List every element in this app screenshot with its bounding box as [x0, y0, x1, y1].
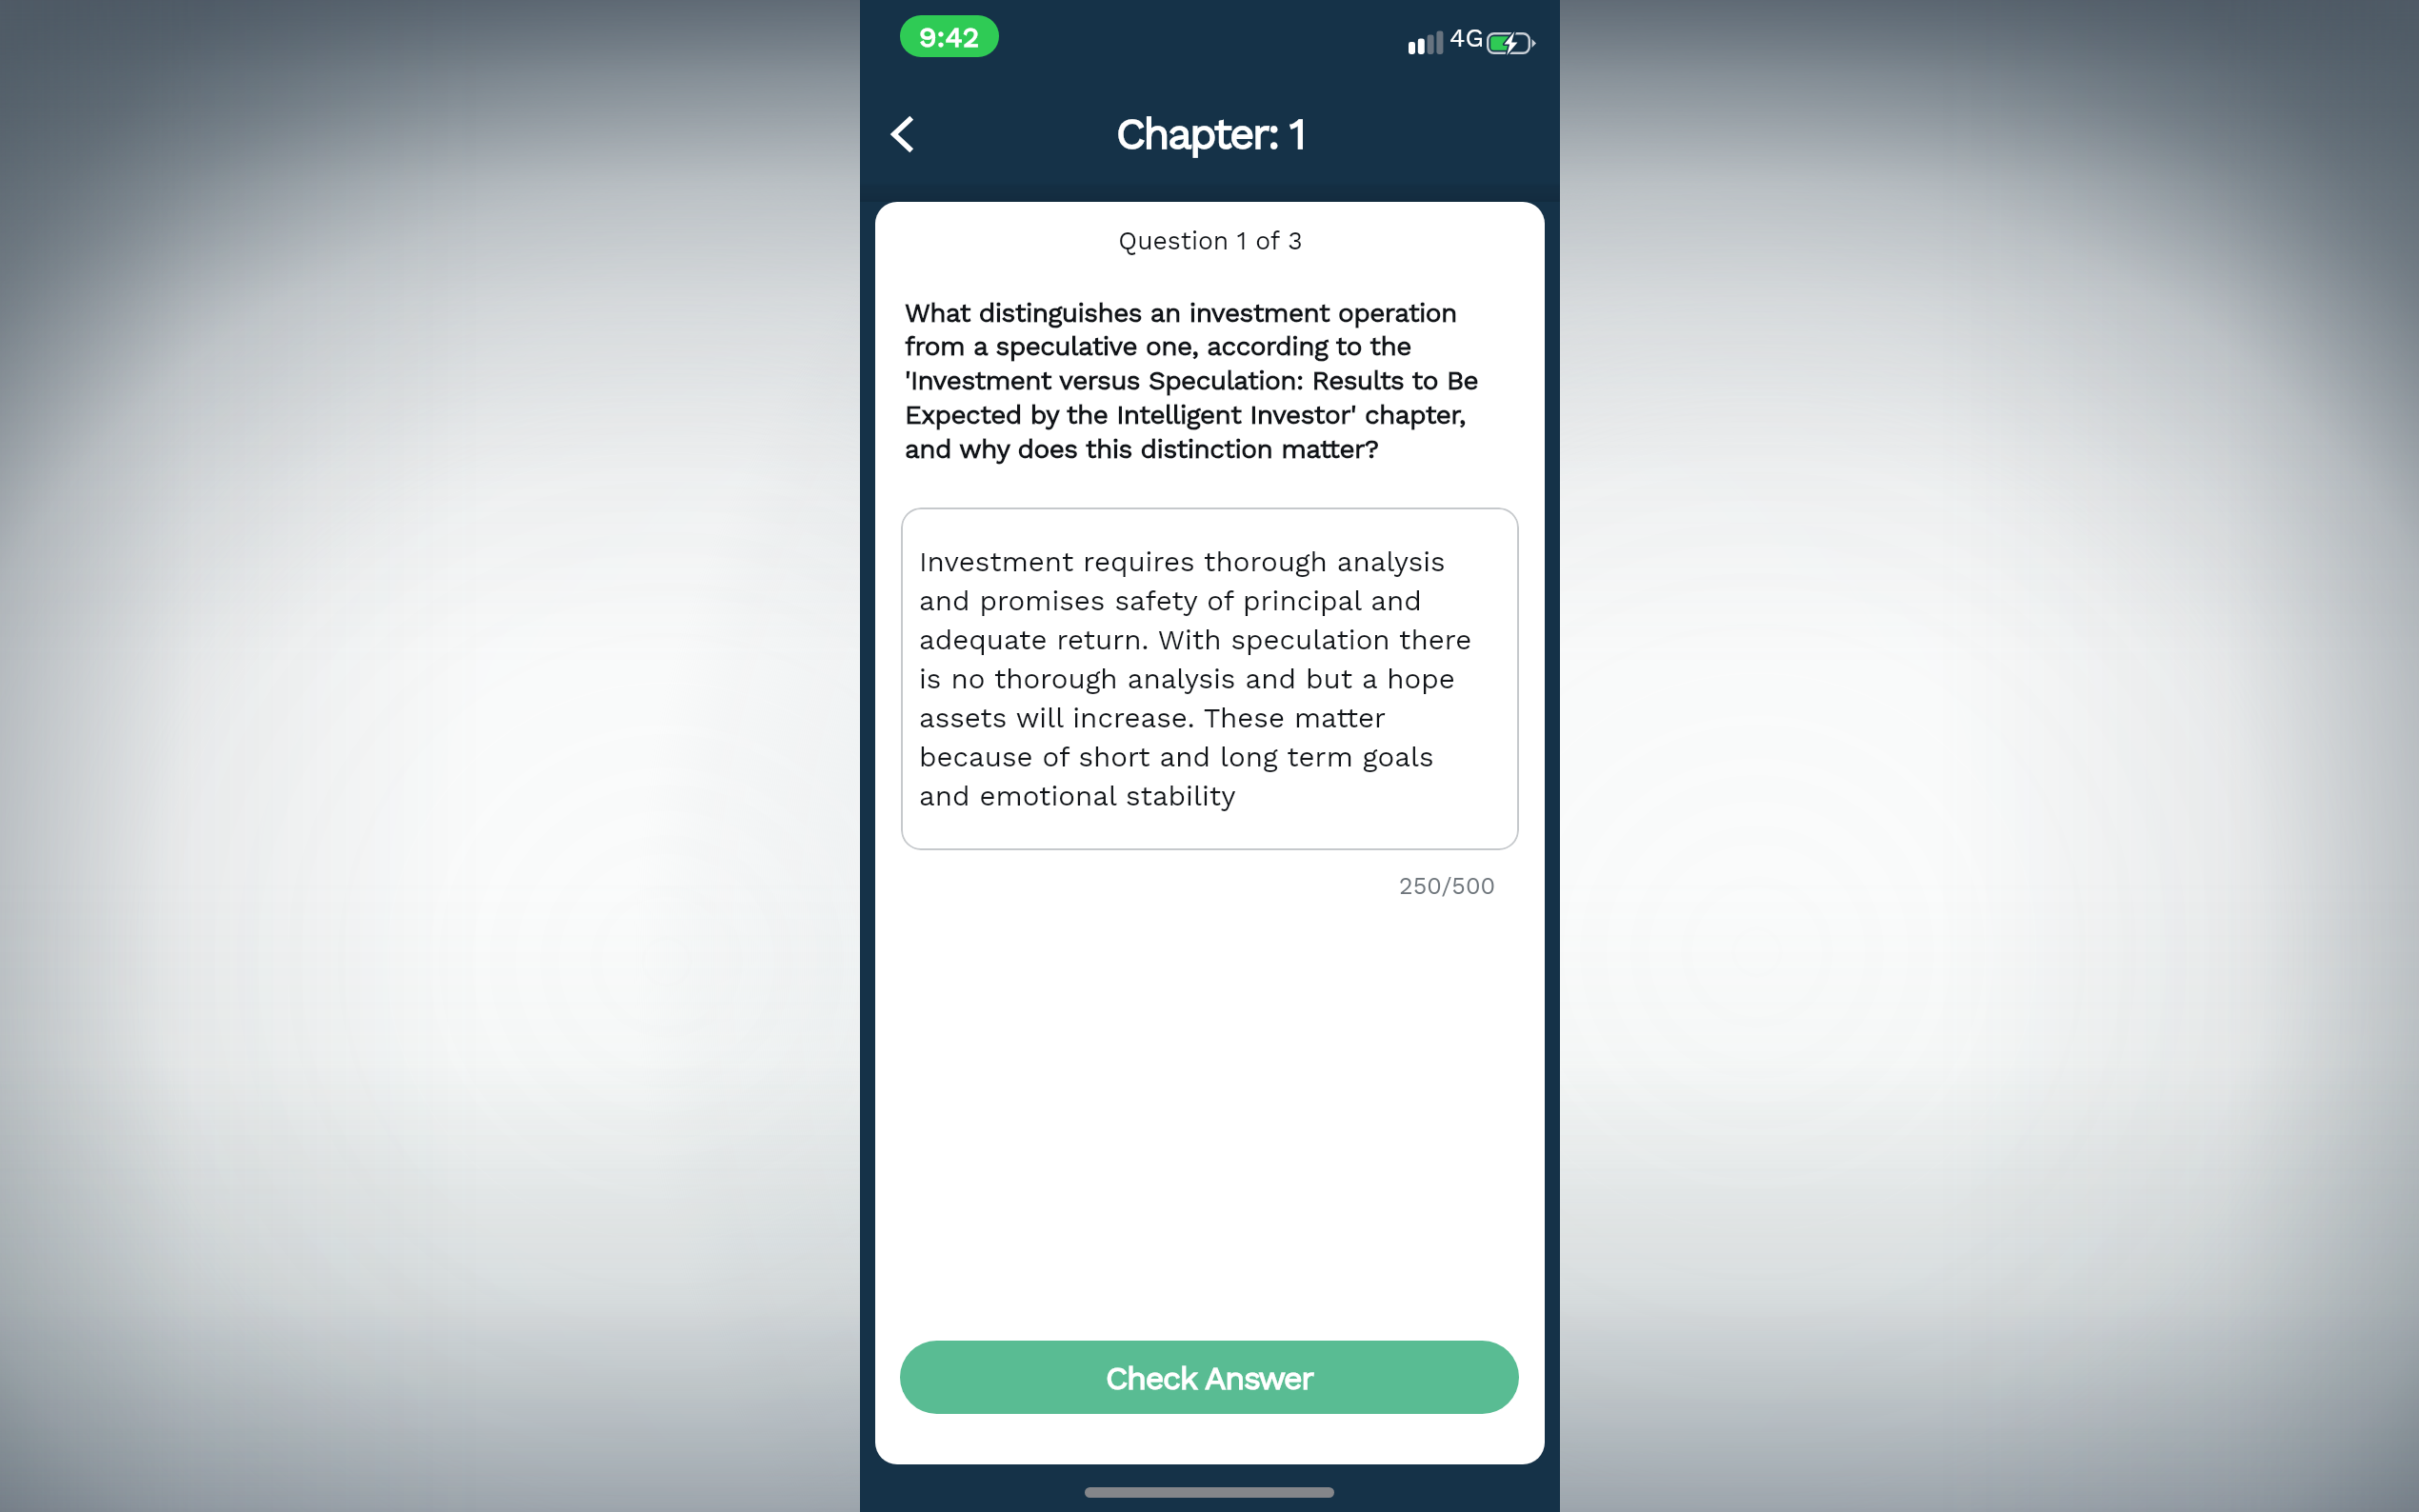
- staticText: Chapter: 1: [1116, 109, 1305, 159]
- button[interactable]: Check Answer: [900, 1341, 1519, 1414]
- button[interactable]: Investment requires thorough analysis an…: [901, 507, 1519, 850]
- staticText: Check Answer: [1106, 1359, 1313, 1397]
- staticText: Question 1 of 3: [1118, 226, 1303, 255]
- staticText: 250/500: [900, 872, 1495, 900]
- button[interactable]: Back: [866, 97, 940, 171]
- staticText: 4G: [1449, 23, 1485, 53]
- staticText: Investment requires thorough analysis an…: [919, 546, 1493, 813]
- staticText: 9:42: [919, 20, 980, 53]
- staticText: What distinguishes an investment operati…: [905, 297, 1514, 465]
